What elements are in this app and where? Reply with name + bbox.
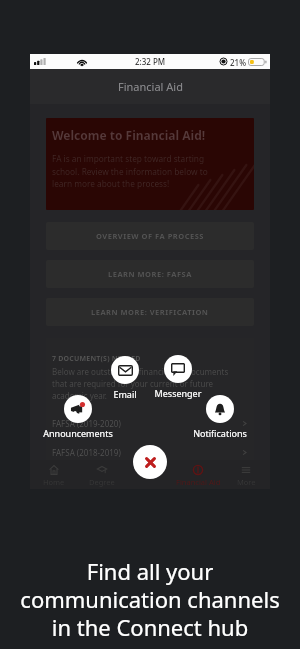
staticText: Find all your communication channels in … bbox=[0, 556, 300, 642]
staticText: FAFSA (2019-2020) bbox=[52, 418, 121, 429]
button[interactable]: Messenger bbox=[164, 355, 192, 383]
staticText: Email bbox=[80, 388, 170, 400]
button[interactable]: Announcements bbox=[64, 395, 92, 423]
staticText: FAFSA (2018-2019) bbox=[52, 447, 121, 458]
button[interactable]: Home bbox=[30, 462, 78, 487]
staticText: LEARN MORE: VERIFICATION bbox=[91, 307, 209, 317]
staticText: 2:32 PM bbox=[135, 56, 166, 67]
button[interactable]: Notifications bbox=[206, 395, 234, 423]
staticText: Financial Aid bbox=[118, 79, 183, 94]
button[interactable]: Close bbox=[133, 445, 167, 479]
button[interactable]: Email bbox=[111, 356, 139, 384]
button[interactable]: Financial Aid bbox=[174, 462, 222, 487]
staticText: More bbox=[237, 477, 256, 487]
button[interactable]: LEARN MORE: VERIFICATION bbox=[46, 298, 254, 326]
staticText: Announcements bbox=[33, 427, 123, 439]
button[interactable]: Degree bbox=[78, 462, 126, 487]
button[interactable]: FAFSA (2019-2020) bbox=[52, 414, 248, 432]
staticText: LEARN MORE: FAFSA bbox=[108, 269, 192, 279]
button[interactable]: LEARN MORE: FAFSA bbox=[46, 260, 254, 288]
staticText: 7 DOCUMENT(S) NEEDED bbox=[52, 354, 141, 364]
staticText: 21% bbox=[230, 57, 246, 68]
staticText: Home bbox=[43, 477, 65, 487]
staticText: Degree bbox=[89, 477, 115, 487]
button[interactable]: More bbox=[222, 462, 270, 487]
staticText: Financial Aid bbox=[176, 477, 221, 487]
staticText: Notifications bbox=[175, 427, 265, 439]
button[interactable]: OVERVIEW OF FA PROCESS bbox=[46, 222, 254, 250]
staticText: Below are outstanding financial aid docu… bbox=[52, 366, 234, 401]
staticText: FA is an important step toward starting … bbox=[52, 153, 224, 189]
staticText: Messenger bbox=[133, 387, 223, 399]
staticText: OVERVIEW OF FA PROCESS bbox=[96, 231, 204, 241]
staticText: Welcome to Financial Aid! bbox=[52, 127, 206, 143]
button[interactable]: FAFSA (2018-2019) bbox=[52, 443, 248, 461]
